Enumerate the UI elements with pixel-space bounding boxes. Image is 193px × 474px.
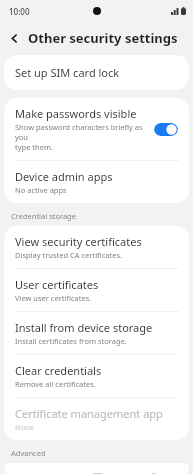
staticText: None [15, 422, 35, 432]
staticText: 10:00 [9, 6, 30, 17]
button[interactable]: View security certificates [4, 226, 189, 268]
button[interactable]: Trust agents [4, 463, 189, 474]
staticText: Device admin apps [15, 169, 113, 184]
button[interactable]: User certificates [4, 269, 189, 311]
button[interactable]: Device admin apps [4, 161, 189, 203]
staticText: Credential storage [11, 211, 76, 221]
staticText: Install certificates from storage. [15, 336, 127, 346]
button[interactable]: Make passwords visible [154, 123, 178, 136]
staticText: User certificates [15, 277, 99, 292]
staticText: Show password characters briefly as you … [15, 122, 148, 152]
button[interactable]: Certificate management app [4, 398, 189, 440]
staticText: Make passwords visible [15, 106, 137, 121]
staticText: Display trusted CA certificates. [15, 250, 122, 260]
staticText: Remove all certificates. [15, 379, 96, 389]
staticText: No active apps [15, 185, 67, 195]
staticText: Set up SIM card lock [15, 65, 120, 80]
staticText: View security certificates [15, 234, 142, 249]
button[interactable]: Set up SIM card lock [4, 55, 189, 90]
staticText: Install from device storage [15, 320, 153, 335]
button[interactable]: Make passwords visible [4, 98, 189, 160]
button[interactable]: Navigate up [4, 28, 24, 48]
staticText: Advanced [11, 448, 46, 458]
button[interactable]: Install from device storage [4, 312, 189, 354]
staticText: Clear credentials [15, 363, 102, 378]
staticText: View user certificates. [15, 293, 92, 303]
staticText: Other security settings [28, 29, 178, 47]
staticText: Certificate management app [15, 406, 163, 421]
button[interactable]: Clear credentials [4, 355, 189, 397]
